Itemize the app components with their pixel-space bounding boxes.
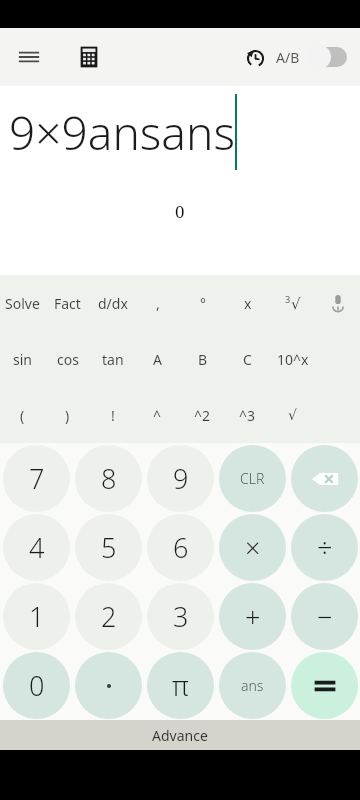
button[interactable]: π <box>147 652 214 719</box>
staticText: x <box>244 294 252 313</box>
button[interactable]: Menu <box>8 36 50 78</box>
staticText: 8 <box>101 460 117 497</box>
staticText: , <box>156 294 160 313</box>
button[interactable]: 8 <box>75 445 142 512</box>
button[interactable]: ° <box>180 275 225 331</box>
staticText: 6 <box>173 529 189 566</box>
button[interactable]: 4 <box>3 514 70 581</box>
button[interactable]: 3 <box>147 583 214 650</box>
staticText: Advance <box>152 726 208 745</box>
button[interactable]: ans <box>219 652 286 719</box>
button[interactable]: ) <box>45 387 90 443</box>
button[interactable]: CLR <box>219 445 286 512</box>
button[interactable]: C <box>225 331 270 387</box>
button[interactable]: 1 <box>3 583 70 650</box>
staticText: ^3 <box>239 406 256 425</box>
staticText: 1 <box>29 598 45 635</box>
button[interactable]: Advance <box>0 720 360 750</box>
button[interactable] <box>291 652 358 719</box>
button[interactable]: A <box>135 331 180 387</box>
button[interactable]: 2 <box>75 583 142 650</box>
staticText: B <box>198 350 208 369</box>
staticText: 3 <box>285 293 291 305</box>
button[interactable]: √ <box>270 387 315 443</box>
button[interactable]: tan <box>90 331 135 387</box>
button[interactable]: ^3 <box>225 387 270 443</box>
staticText: √ <box>288 407 297 423</box>
staticText: 2 <box>101 598 117 635</box>
staticText: A/B <box>276 48 300 67</box>
staticText: π <box>172 667 189 704</box>
button[interactable]: ^ <box>135 387 180 443</box>
staticText: ! <box>111 406 115 425</box>
staticText: CLR <box>240 469 265 488</box>
staticText: 5 <box>101 529 117 566</box>
button[interactable]: ^2 <box>180 387 225 443</box>
button[interactable]: Solve <box>0 275 45 331</box>
button[interactable]: ! <box>90 387 135 443</box>
button[interactable]: × <box>219 514 286 581</box>
button[interactable]: History <box>235 38 273 76</box>
button[interactable]: Backspace <box>291 445 358 512</box>
staticText: ) <box>65 406 70 425</box>
button[interactable]: ÷ <box>291 514 358 581</box>
staticText: A <box>153 350 162 369</box>
staticText: × <box>245 529 261 566</box>
button[interactable]: 7 <box>3 445 70 512</box>
staticText: C <box>243 350 252 369</box>
button[interactable]: Voice input <box>315 275 360 331</box>
staticText: 9×9ansans <box>9 101 235 164</box>
button[interactable]: x <box>225 275 270 331</box>
button[interactable]: cos <box>45 331 90 387</box>
staticText: 9 <box>173 460 189 497</box>
button[interactable]: 5 <box>75 514 142 581</box>
staticText: + <box>245 598 261 635</box>
staticText: Fact <box>54 294 81 313</box>
button[interactable]: A/B <box>273 40 352 74</box>
staticText: cos <box>57 350 79 369</box>
staticText: 0 <box>29 667 45 704</box>
staticText: 7 <box>29 460 45 497</box>
button[interactable] <box>75 652 142 719</box>
staticText: ° <box>200 294 206 313</box>
staticText: ÷ <box>317 529 333 566</box>
button[interactable]: d/dx <box>90 275 135 331</box>
staticText: 4 <box>29 529 45 566</box>
staticText: tan <box>102 350 124 369</box>
button[interactable]: 6 <box>147 514 214 581</box>
staticText: 10^x <box>277 350 309 369</box>
staticText: ^2 <box>194 406 211 425</box>
staticText: sin <box>13 350 32 369</box>
staticText: ^ <box>153 406 162 425</box>
button[interactable]: , <box>135 275 180 331</box>
staticText: √ <box>291 295 301 312</box>
staticText: − <box>317 598 333 635</box>
staticText: ( <box>20 406 25 425</box>
staticText: 3 <box>173 598 189 635</box>
button[interactable]: B <box>180 331 225 387</box>
button[interactable]: ( <box>0 387 45 443</box>
button[interactable]: + <box>219 583 286 650</box>
staticText: 0 <box>175 200 185 223</box>
button[interactable]: − <box>291 583 358 650</box>
staticText: d/dx <box>98 294 128 313</box>
button[interactable]: 0 <box>3 652 70 719</box>
button[interactable]: Fact <box>45 275 90 331</box>
button[interactable]: 3 <box>270 275 315 331</box>
staticText: ans <box>241 676 264 695</box>
button[interactable]: sin <box>0 331 45 387</box>
button[interactable]: 10^x <box>270 331 315 387</box>
staticText: Solve <box>5 294 40 313</box>
button[interactable]: 9 <box>147 445 214 512</box>
button[interactable]: Calculator <box>68 36 110 78</box>
